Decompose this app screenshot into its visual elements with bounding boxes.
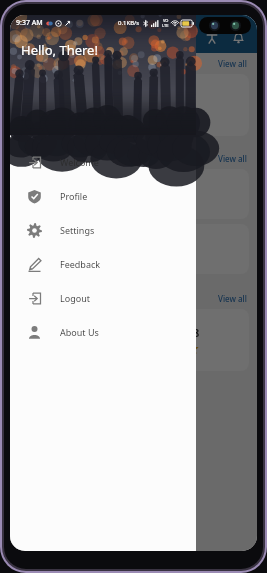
button[interactable]: Profile: [10, 179, 196, 213]
button[interactable]: View all: [218, 293, 247, 304]
staticText: Logout: [60, 292, 90, 304]
button[interactable]: Settings: [10, 213, 196, 247]
staticText: About Us: [60, 326, 99, 338]
button[interactable]: 4.8: [136, 309, 249, 371]
staticText: Settings: [60, 224, 95, 236]
button[interactable]: Accessibility: [199, 24, 225, 50]
button[interactable]: View all: [218, 58, 247, 69]
staticText: 9:37 AM: [16, 18, 43, 28]
button[interactable]: Logout: [10, 281, 196, 315]
staticText: 0.1KB/s: [118, 19, 140, 27]
staticText: Feedback: [60, 258, 101, 270]
button[interactable]: Notifications: [225, 24, 251, 50]
button[interactable]: Game Party: [18, 224, 249, 274]
button[interactable]: Tournament: [18, 169, 249, 219]
staticText: LTE: [162, 23, 169, 28]
button[interactable]: 4.8: [18, 309, 130, 371]
button[interactable]: View all: [218, 153, 247, 164]
staticText: Hello, There!: [21, 41, 98, 59]
button[interactable]: Welcome: [10, 145, 196, 179]
staticText: 4.8: [185, 326, 200, 340]
staticText: Profile: [60, 190, 88, 202]
staticText: Welcome: [60, 156, 99, 168]
staticText: 4.8: [67, 326, 82, 340]
button[interactable]: Feedback: [10, 247, 196, 281]
button[interactable]: About Us: [10, 315, 196, 349]
button[interactable]: [18, 74, 249, 136]
staticText: VO: [163, 18, 169, 23]
